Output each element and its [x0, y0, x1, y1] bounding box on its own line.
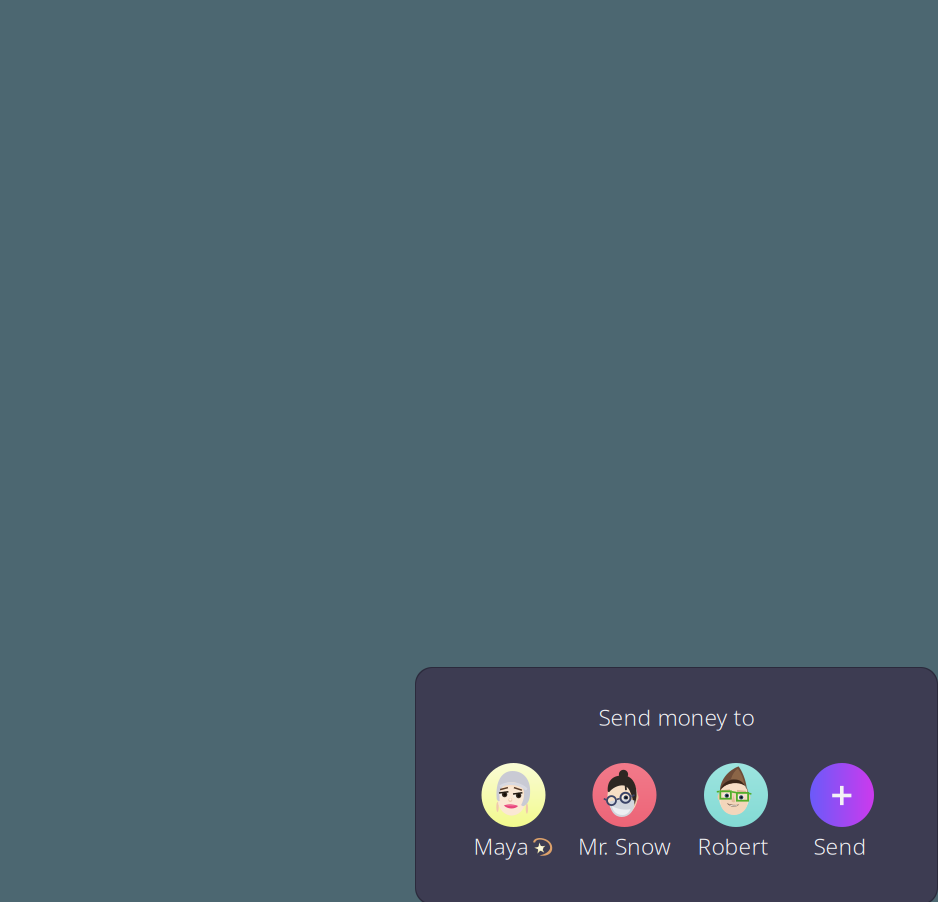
button[interactable]: Maya	[461, 763, 565, 857]
staticText: Mr. Snow	[578, 831, 671, 861]
button[interactable]: Mr. Snow	[572, 763, 676, 857]
staticText: Maya	[473, 831, 528, 861]
staticText: Robert	[697, 831, 768, 861]
button[interactable]: Robert	[684, 763, 788, 857]
staticText: Send money to	[598, 702, 754, 732]
button[interactable]: Send	[790, 763, 894, 857]
staticText: Send	[813, 831, 866, 861]
